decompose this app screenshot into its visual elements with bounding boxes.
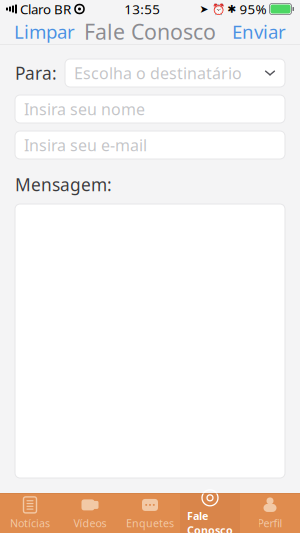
button[interactable]: Fale Conosco <box>180 493 240 533</box>
button[interactable]: Enquetes <box>120 493 180 533</box>
button[interactable]: Insira seu nome <box>15 95 285 123</box>
staticText: Para: <box>15 61 57 84</box>
button[interactable]: Escolha o destinatário <box>65 59 285 87</box>
staticText: Limpar <box>14 19 75 44</box>
staticText: Enviar <box>232 19 286 44</box>
staticText: Claro BR <box>20 0 71 18</box>
button[interactable]: Limpar <box>0 13 89 50</box>
staticText: Vídeos <box>73 516 106 530</box>
staticText: Fale Conosco <box>84 17 216 46</box>
staticText: ⏰ <box>211 3 224 15</box>
button[interactable]: Vídeos <box>60 493 120 533</box>
staticText: Fale Conosco <box>187 509 233 533</box>
button[interactable]: Enviar <box>218 13 300 50</box>
staticText: ✱ <box>227 3 236 15</box>
staticText: Perfil <box>257 516 282 530</box>
staticText: Insira seu e-mail <box>24 134 147 156</box>
staticText: 13:55 <box>124 0 160 18</box>
button[interactable]: Insira seu e-mail <box>15 131 285 159</box>
staticText: 95% <box>239 0 266 18</box>
button[interactable]: Notícias <box>0 493 60 533</box>
button[interactable]: Perfil <box>240 493 300 533</box>
staticText: ➤ <box>199 3 208 15</box>
staticText: Escolha o destinatário <box>74 62 242 84</box>
staticText: Enquetes <box>126 516 174 530</box>
staticText: Mensagem: <box>15 173 112 196</box>
staticText: Insira seu nome <box>24 98 145 120</box>
staticText: Notícias <box>10 516 50 530</box>
